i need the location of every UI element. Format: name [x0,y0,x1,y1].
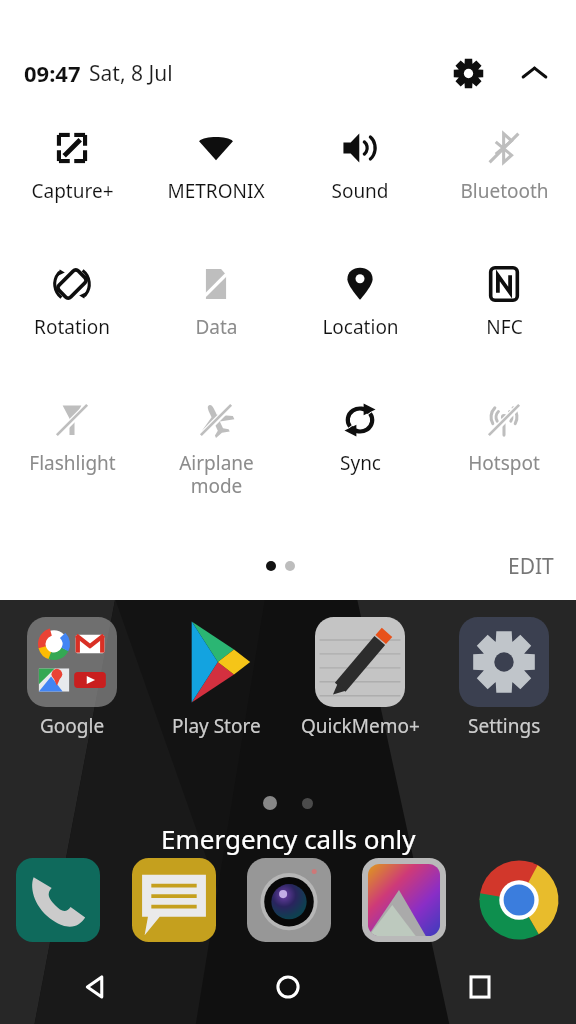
button[interactable]: Capture+ [0,128,144,206]
staticText: METRONIX [167,178,265,204]
button[interactable]: EDIT [486,540,576,592]
button[interactable]: Hotspot [432,400,576,478]
button[interactable]: Google [0,617,144,739]
button[interactable]: Messaging [116,852,231,948]
button[interactable]: Rotation [0,264,144,342]
button[interactable]: Settings [440,46,496,100]
staticText: 09:47 [24,58,81,88]
button[interactable]: Data [144,264,288,342]
staticText: Play Store [172,713,261,739]
staticText: Flashlight [29,450,116,476]
staticText: Airplane mode [179,450,254,499]
button[interactable]: METRONIX [144,128,288,206]
button[interactable]: Settings [432,617,576,739]
button[interactable]: Flashlight [0,400,144,478]
button[interactable]: Recent apps [384,950,576,1024]
button[interactable]: Gallery [346,852,461,948]
button[interactable]: Phone [0,852,116,948]
button[interactable]: Play Store [144,617,288,739]
staticText: Capture+ [31,178,114,204]
button[interactable]: Airplane mode [144,400,288,501]
button[interactable]: QuickMemo+ [288,617,432,739]
staticText: Data [195,314,238,340]
staticText: Sat, 8 Jul [89,59,173,88]
staticText: QuickMemo+ [301,713,420,739]
staticText: Rotation [34,314,110,340]
staticText: Hotspot [468,450,540,476]
staticText: Location [322,314,399,340]
staticText: Emergency calls only [161,821,416,856]
button[interactable]: Home [192,950,384,1024]
staticText: Google [40,713,105,739]
button[interactable]: Camera [231,852,346,948]
button[interactable]: Sync [288,400,432,478]
button[interactable]: Back [0,950,192,1024]
button[interactable]: NFC [432,264,576,342]
button[interactable]: Location [288,264,432,342]
button[interactable]: Sound [288,128,432,206]
staticText: Sound [331,178,389,204]
staticText: Sync [340,450,381,476]
button[interactable]: Chrome [461,852,576,948]
button[interactable]: Bluetooth [432,128,576,206]
staticText: Settings [468,713,541,739]
button[interactable]: Collapse panel [506,46,562,100]
staticText: EDIT [508,552,554,580]
staticText: Bluetooth [460,178,549,204]
staticText: NFC [486,314,523,340]
